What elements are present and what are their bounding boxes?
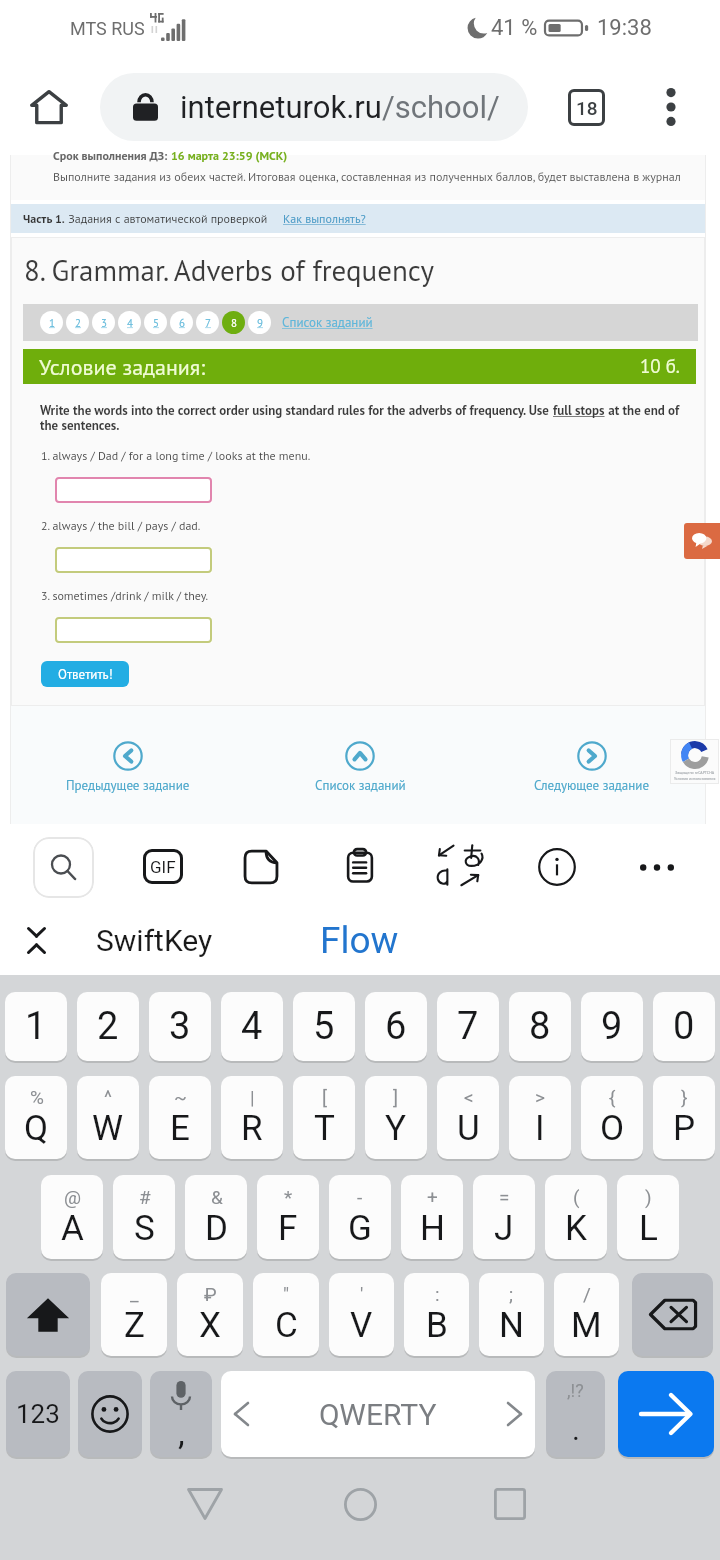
button[interactable]: Recents	[470, 1478, 550, 1530]
button[interactable]: #	[113, 1175, 175, 1259]
button[interactable]: 1	[5, 992, 67, 1061]
button[interactable]: -	[329, 1175, 391, 1259]
button[interactable]: @	[41, 1175, 103, 1259]
button[interactable]: 1	[40, 311, 63, 334]
button[interactable]: Backspace	[632, 1273, 713, 1356]
button[interactable]: 3	[92, 311, 115, 334]
button[interactable]: Enter	[618, 1371, 714, 1457]
button[interactable]: Translate	[428, 841, 488, 889]
staticText: .	[572, 1412, 580, 1447]
staticText: 3	[169, 1004, 191, 1049]
button[interactable]: Comments	[684, 523, 720, 559]
button[interactable]: "	[253, 1273, 319, 1356]
button[interactable]: 4	[118, 311, 141, 334]
staticText: Y	[385, 1108, 407, 1149]
button[interactable]: Search	[33, 837, 94, 898]
staticText: 2. always / the bill / pays / dad.	[41, 518, 201, 534]
button[interactable]: )	[617, 1175, 679, 1259]
button[interactable]: _	[101, 1273, 167, 1356]
button[interactable]: 5	[144, 311, 167, 334]
button[interactable]: 7	[437, 992, 499, 1061]
button[interactable]: Back	[165, 1478, 245, 1530]
button[interactable]: <	[437, 1076, 499, 1159]
button[interactable]: 8	[222, 311, 245, 334]
button[interactable]: Clipboard	[338, 844, 382, 888]
staticText: K	[565, 1208, 587, 1249]
button[interactable]: Close keyboard	[14, 918, 58, 962]
staticText: Задания с автоматической проверкой	[65, 211, 268, 227]
button[interactable]: }	[653, 1076, 715, 1159]
button[interactable]: interneturok.ru	[100, 73, 528, 141]
button[interactable]: 2	[66, 311, 89, 334]
button[interactable]: |	[221, 1076, 283, 1159]
button[interactable]: Tabs	[554, 75, 618, 139]
button[interactable]: 5	[293, 992, 355, 1061]
button[interactable]: '	[329, 1273, 394, 1356]
button[interactable]: QWERTY	[221, 1371, 535, 1457]
staticText: _	[130, 1283, 139, 1305]
staticText: /	[583, 1283, 591, 1305]
staticText: V	[350, 1305, 373, 1346]
button[interactable]: 7	[196, 311, 219, 334]
staticText: }	[681, 1086, 688, 1108]
staticText: 4	[241, 1004, 263, 1049]
button[interactable]: >	[509, 1076, 571, 1159]
staticText: U	[457, 1108, 480, 1149]
staticText: 7	[457, 1004, 479, 1049]
button[interactable]: 9	[581, 992, 643, 1061]
staticText: full stops	[553, 402, 605, 419]
staticText: 10 б.	[640, 354, 680, 379]
button[interactable]: /	[554, 1273, 619, 1356]
button[interactable]: Emoji	[78, 1371, 142, 1457]
staticText: 9	[601, 1004, 623, 1049]
button[interactable]: Home	[18, 76, 80, 138]
button[interactable]: [	[293, 1076, 355, 1159]
button[interactable]: Часть 1.	[11, 204, 705, 233]
button[interactable]: 3	[149, 992, 211, 1061]
button[interactable]	[55, 617, 212, 643]
button[interactable]: *	[257, 1175, 319, 1259]
button[interactable]: :	[404, 1273, 469, 1356]
button[interactable]: Shift	[6, 1273, 90, 1356]
button[interactable]: (	[545, 1175, 607, 1259]
button[interactable]: Ответить!	[41, 661, 129, 687]
staticText: =	[499, 1186, 510, 1208]
button[interactable]: 0	[653, 992, 715, 1061]
staticText: >	[535, 1086, 545, 1108]
button[interactable]: GIF	[143, 849, 183, 884]
button[interactable]: Следующее задание	[512, 741, 672, 794]
button[interactable]: 4	[221, 992, 283, 1061]
button[interactable]: ^	[77, 1076, 139, 1159]
button[interactable]: 6	[170, 311, 193, 334]
button[interactable]: 2	[77, 992, 139, 1061]
button[interactable]: Список заданий	[280, 741, 440, 794]
button[interactable]	[55, 547, 212, 573]
button[interactable]: Предыдущее задание	[48, 741, 208, 794]
button[interactable]: %	[5, 1076, 67, 1159]
button[interactable]: Stickers	[238, 844, 284, 890]
button[interactable]: =	[473, 1175, 535, 1259]
button[interactable]: More options	[640, 76, 702, 138]
button[interactable]: ]	[365, 1076, 427, 1159]
button[interactable]: Home	[320, 1478, 400, 1530]
button[interactable]: ₽	[177, 1273, 243, 1356]
button[interactable]: ;	[479, 1273, 544, 1356]
button[interactable]: &	[185, 1175, 247, 1259]
button[interactable]: 123	[6, 1371, 70, 1457]
button[interactable]: Voice input	[150, 1371, 212, 1457]
button[interactable]: 6	[365, 992, 427, 1061]
button[interactable]: Info	[534, 844, 580, 890]
staticText: 5	[313, 1004, 335, 1049]
staticText: 5	[153, 316, 159, 330]
button[interactable]: ~	[149, 1076, 211, 1159]
button[interactable]	[55, 477, 212, 503]
staticText: Список заданий	[315, 777, 406, 794]
button[interactable]: 9	[248, 311, 271, 334]
button[interactable]: {	[581, 1076, 643, 1159]
staticText: @	[64, 1186, 82, 1208]
staticText: T	[314, 1108, 335, 1149]
button[interactable]: More	[634, 844, 680, 890]
button[interactable]: 8	[509, 992, 571, 1061]
button[interactable]: +	[401, 1175, 463, 1259]
button[interactable]: ,!?	[546, 1371, 605, 1457]
